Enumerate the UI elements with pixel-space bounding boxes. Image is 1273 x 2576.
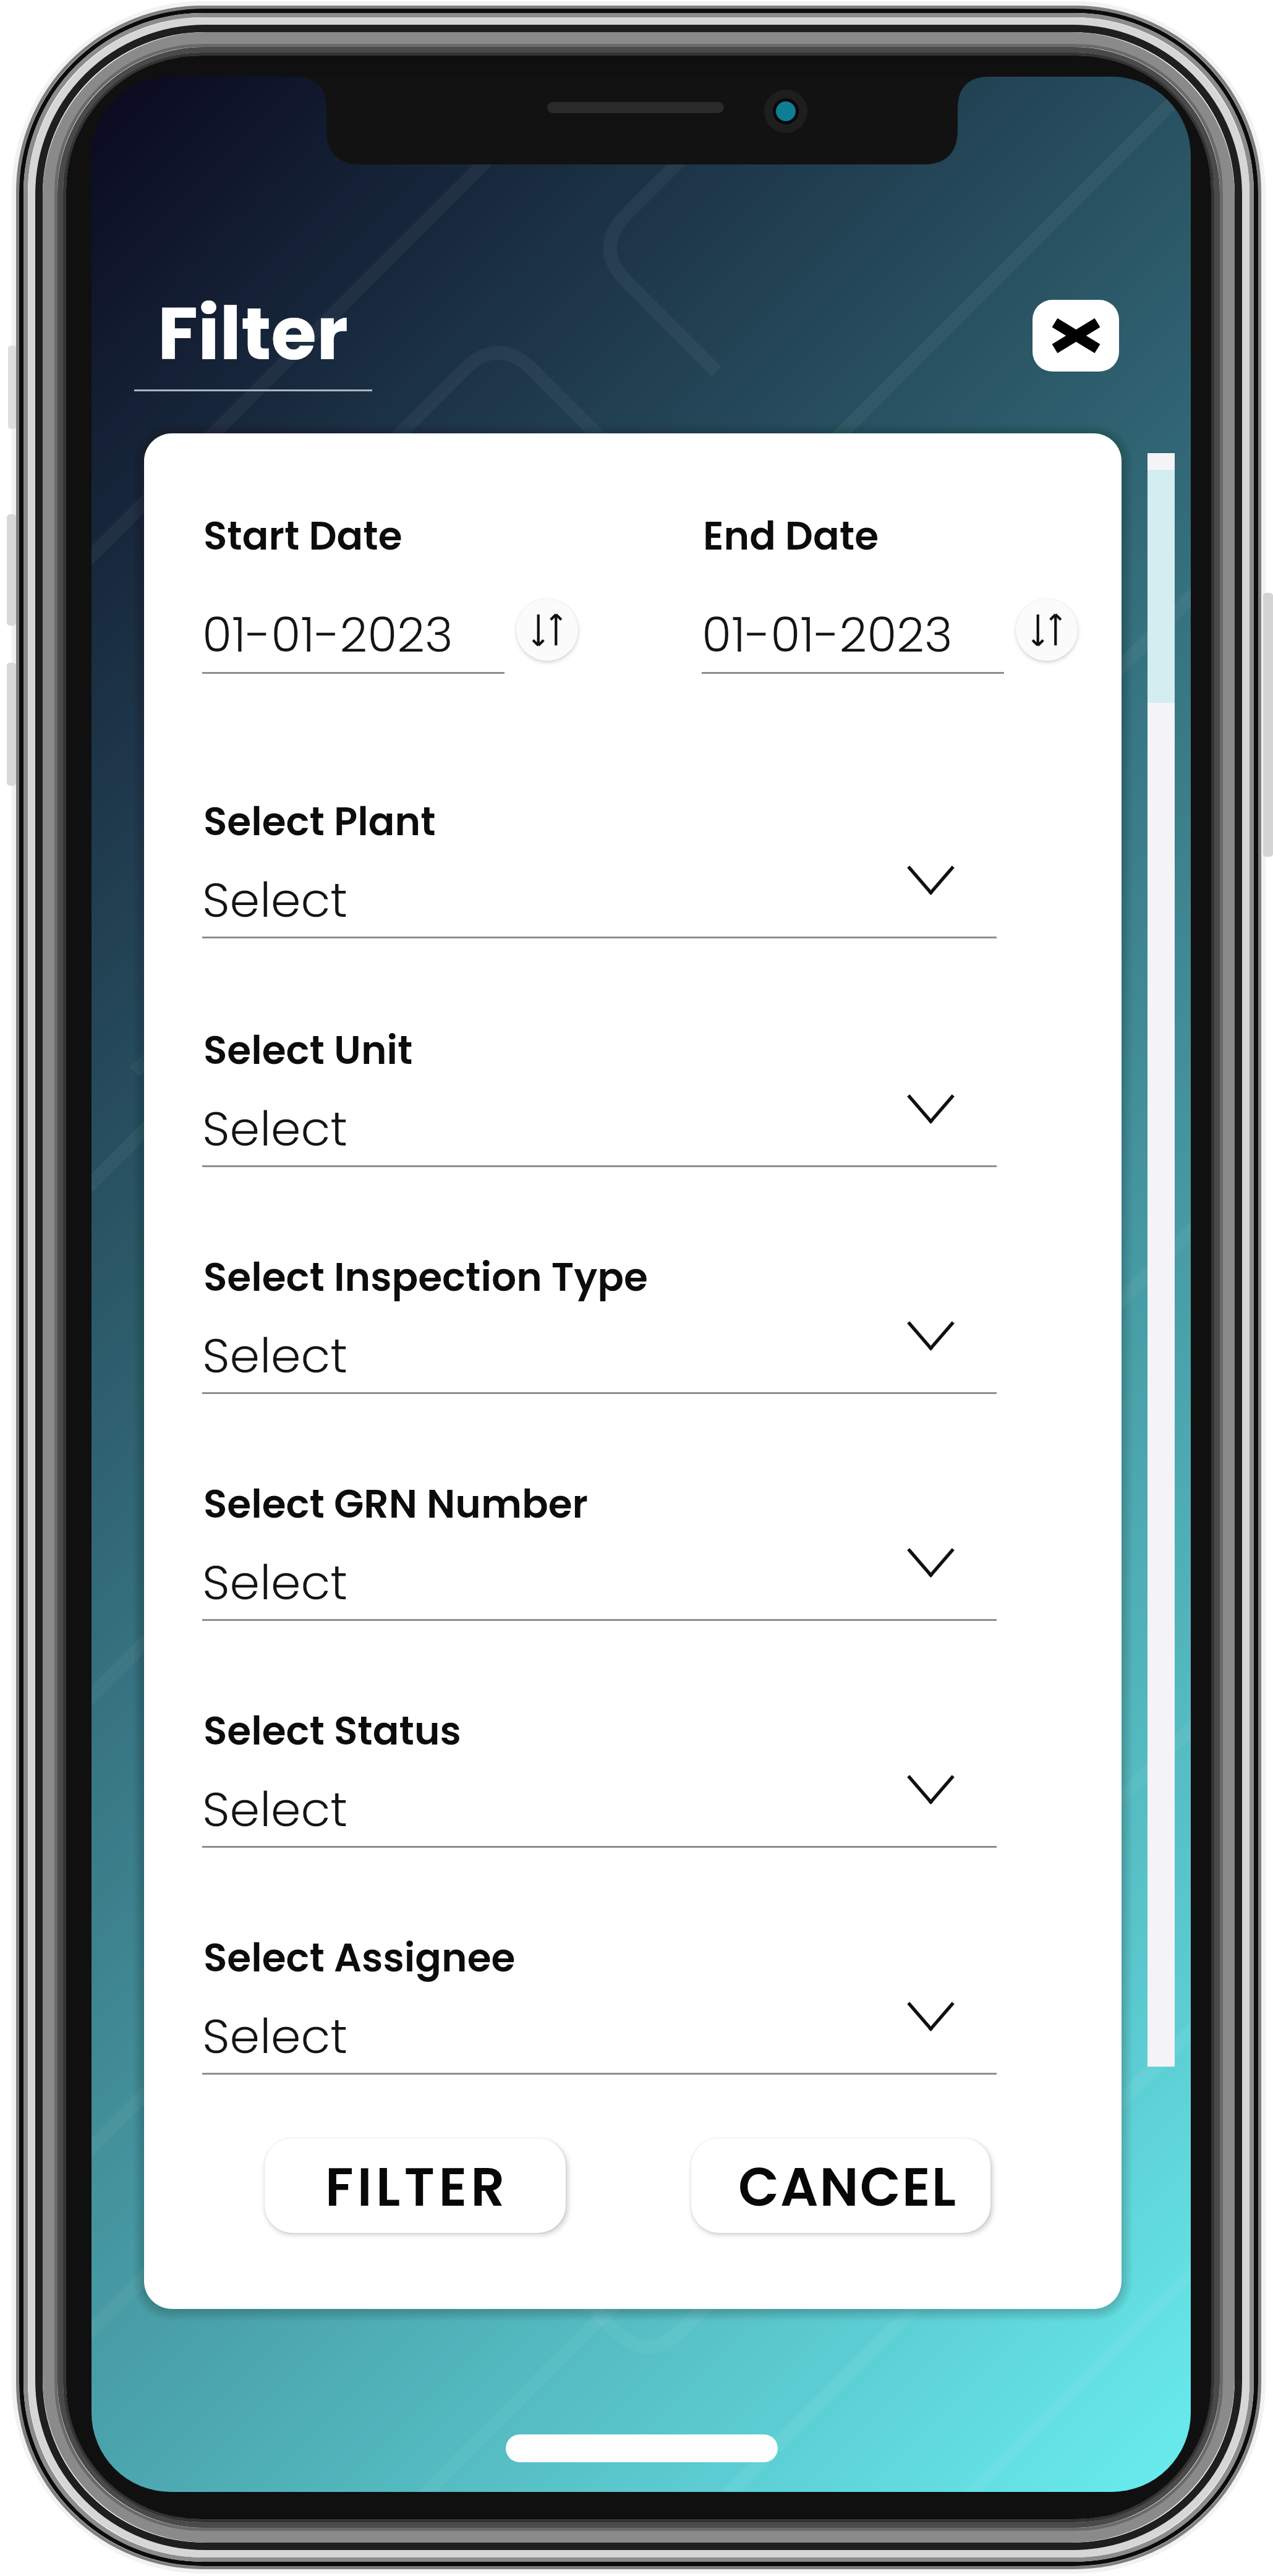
- button[interactable]: FILTER: [265, 2138, 566, 2233]
- staticText: Select Plant: [203, 794, 436, 849]
- staticText: End Date: [703, 509, 879, 563]
- staticText: 01-01-2023: [202, 601, 453, 668]
- staticText: 01-01-2023: [702, 601, 953, 668]
- staticText: Start Date: [203, 509, 402, 563]
- button[interactable]: CANCEL: [691, 2138, 990, 2233]
- staticText: Select Assignee: [203, 1931, 516, 1985]
- staticText: Select: [202, 1775, 348, 1843]
- button[interactable]: Select Plant: [202, 793, 997, 938]
- staticText: Select Unit: [203, 1023, 413, 1078]
- staticText: Select: [202, 1095, 348, 1162]
- button[interactable]: Select GRN Number: [202, 1475, 997, 1621]
- staticText: Select Inspection Type: [203, 1250, 648, 1304]
- button[interactable]: Select Status: [202, 1702, 997, 1848]
- staticText: Select: [202, 866, 348, 933]
- button[interactable]: Close: [1032, 300, 1119, 372]
- button[interactable]: Select Inspection Type: [202, 1248, 997, 1394]
- staticText: CANCEL: [738, 2150, 958, 2224]
- staticText: Select Status: [203, 1704, 461, 1758]
- staticText: Select: [202, 2002, 348, 2070]
- button[interactable]: Select Assignee: [202, 1929, 997, 2075]
- button[interactable]: Swap End Date: [1016, 599, 1078, 661]
- staticText: Select GRN Number: [203, 1477, 589, 1531]
- button[interactable]: Select Unit: [202, 1021, 997, 1167]
- staticText: Select: [202, 1322, 348, 1389]
- staticText: FILTER: [325, 2150, 509, 2224]
- staticText: Select: [202, 1549, 348, 1616]
- button[interactable]: Swap Start Date: [516, 599, 578, 661]
- staticText: Filter: [158, 282, 348, 385]
